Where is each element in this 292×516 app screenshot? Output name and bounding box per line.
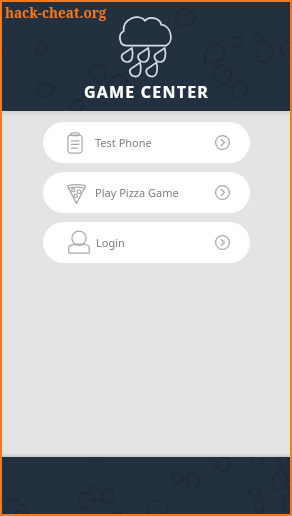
staticText: GAME CENTER [84, 81, 209, 103]
button[interactable]: Pizza [43, 172, 250, 213]
staticText: Test Phone [95, 135, 152, 150]
staticText: Play Pizza Game [95, 185, 179, 200]
other: Pizza [67, 182, 86, 204]
other: Clipboard [67, 132, 83, 154]
other: Open [215, 135, 230, 150]
other: Open [215, 185, 230, 200]
other: Person [67, 232, 91, 254]
button[interactable]: Clipboard [43, 122, 250, 163]
staticText: hack-cheat.org [5, 4, 107, 22]
button[interactable]: Person [43, 222, 250, 263]
other: Open [215, 235, 230, 250]
staticText: Login [96, 235, 125, 250]
